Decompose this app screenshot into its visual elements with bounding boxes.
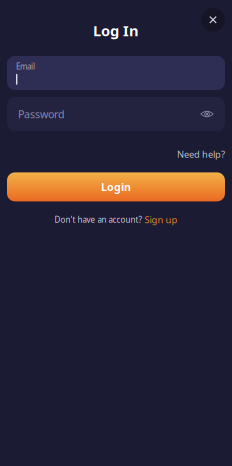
staticText: Don't have an account?: [54, 214, 141, 225]
staticText: Email: [16, 61, 35, 72]
staticText: Log In: [93, 21, 139, 40]
button[interactable]: Sign up: [144, 213, 177, 226]
button[interactable]: Close: [201, 8, 225, 32]
staticText: Password: [18, 107, 65, 121]
button[interactable]: Need help?: [177, 144, 225, 164]
staticText: Login: [101, 180, 131, 194]
staticText: Sign up: [144, 213, 177, 226]
button[interactable]: Login: [7, 172, 225, 201]
staticText: Need help?: [177, 148, 225, 160]
button[interactable]: Show password: [198, 105, 216, 123]
